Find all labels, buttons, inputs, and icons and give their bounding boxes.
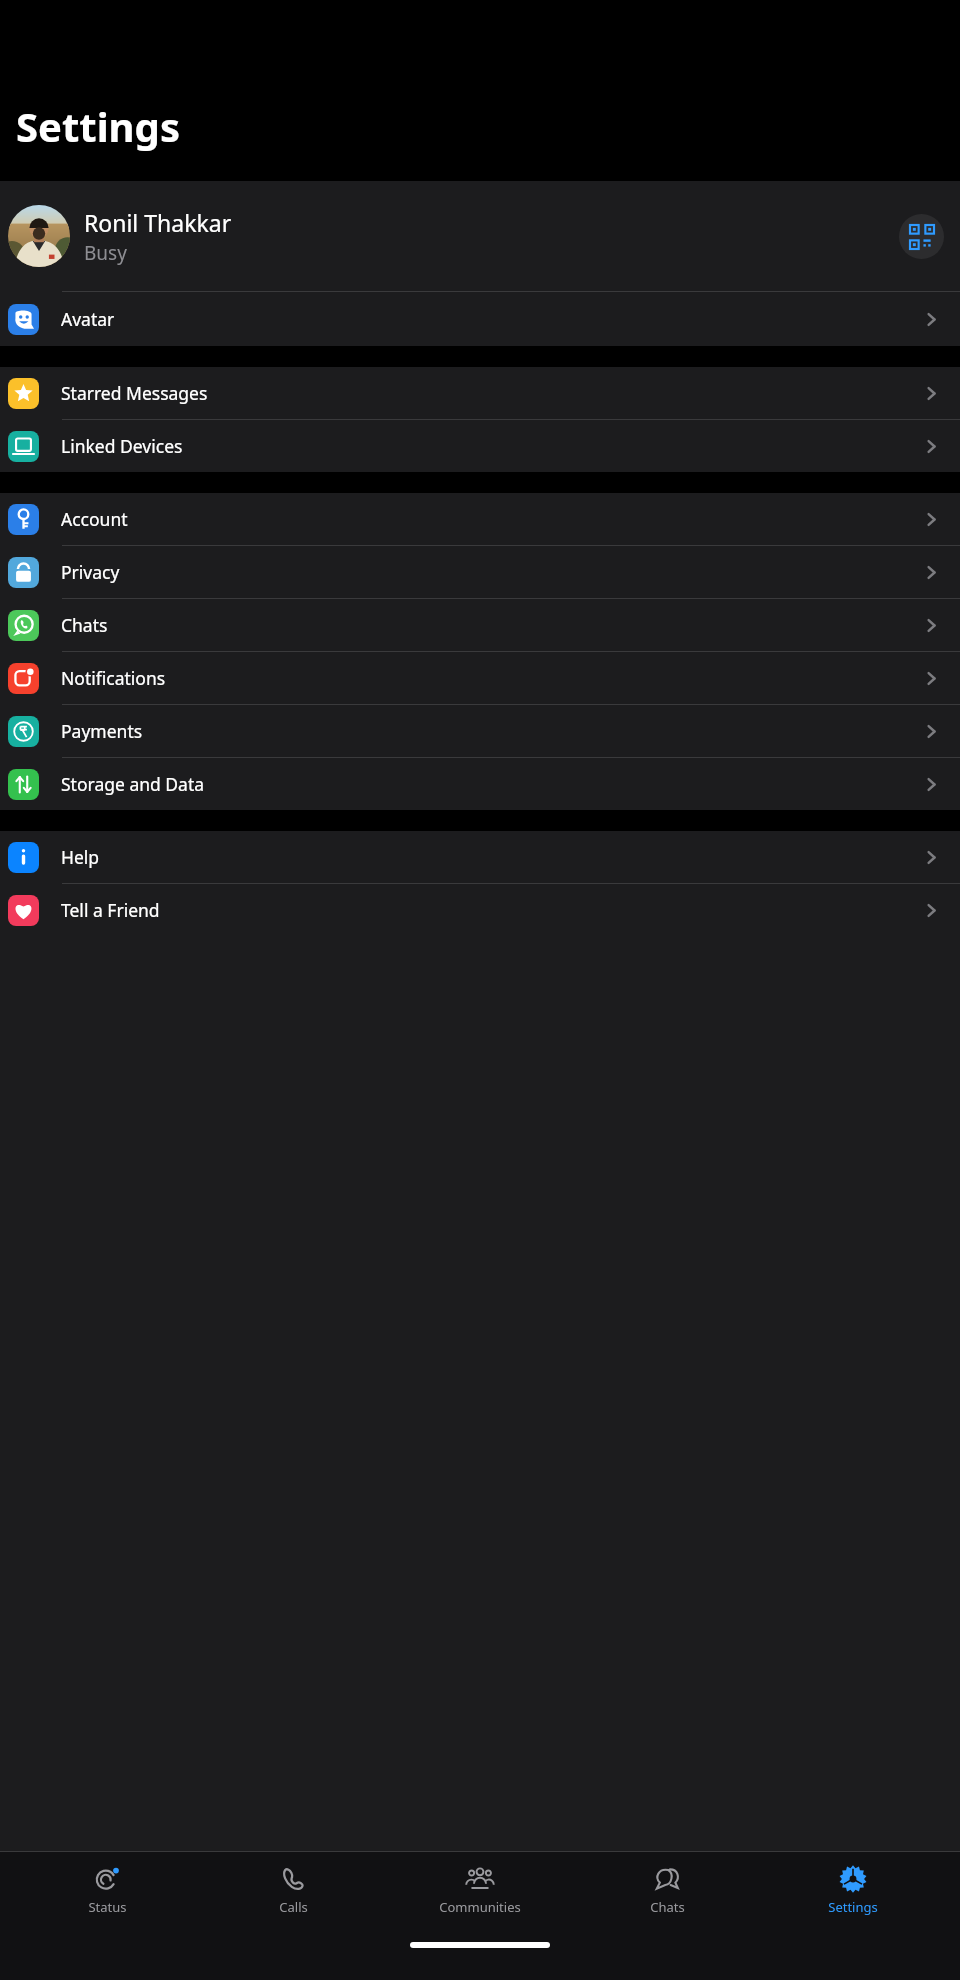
staticText: Busy	[84, 240, 127, 266]
staticText: Payments	[61, 719, 923, 743]
staticText: Settings	[828, 1898, 878, 1916]
staticText: Communities	[439, 1898, 521, 1916]
staticText: Ronil Thakkar	[84, 207, 232, 238]
button[interactable]: Settings	[773, 1860, 933, 1920]
button[interactable]: Starred Messages	[0, 367, 960, 419]
staticText: Chats	[650, 1898, 685, 1916]
button[interactable]: Storage and Data	[0, 758, 960, 810]
staticText: Tell a Friend	[61, 898, 923, 922]
staticText: Status	[88, 1898, 127, 1916]
button[interactable]: Notifications	[0, 652, 960, 704]
button[interactable]: Ronil Thakkar	[0, 181, 960, 291]
staticText: Storage and Data	[61, 772, 923, 796]
button[interactable]: Payments	[0, 705, 960, 757]
staticText: Help	[61, 845, 923, 869]
button[interactable]: Tell a Friend	[0, 884, 960, 936]
staticText: Calls	[279, 1898, 308, 1916]
staticText: Starred Messages	[61, 381, 923, 405]
button[interactable]: Chats	[587, 1860, 747, 1920]
button[interactable]: Calls	[213, 1860, 373, 1920]
button[interactable]: Help	[0, 831, 960, 883]
button[interactable]: Communities	[400, 1860, 560, 1920]
staticText: Linked Devices	[61, 434, 923, 458]
staticText: Privacy	[61, 560, 923, 584]
button[interactable]: QR code	[899, 214, 944, 259]
button[interactable]: Status	[27, 1860, 187, 1920]
button[interactable]: Account	[0, 493, 960, 545]
staticText: Notifications	[61, 666, 923, 690]
staticText: Avatar	[61, 307, 923, 331]
button[interactable]: Privacy	[0, 546, 960, 598]
staticText: Settings	[16, 99, 180, 153]
button[interactable]: Linked Devices	[0, 420, 960, 472]
staticText: Chats	[61, 613, 923, 637]
staticText: Account	[61, 507, 923, 531]
button[interactable]: Avatar	[0, 292, 960, 346]
button[interactable]: Chats	[0, 599, 960, 651]
